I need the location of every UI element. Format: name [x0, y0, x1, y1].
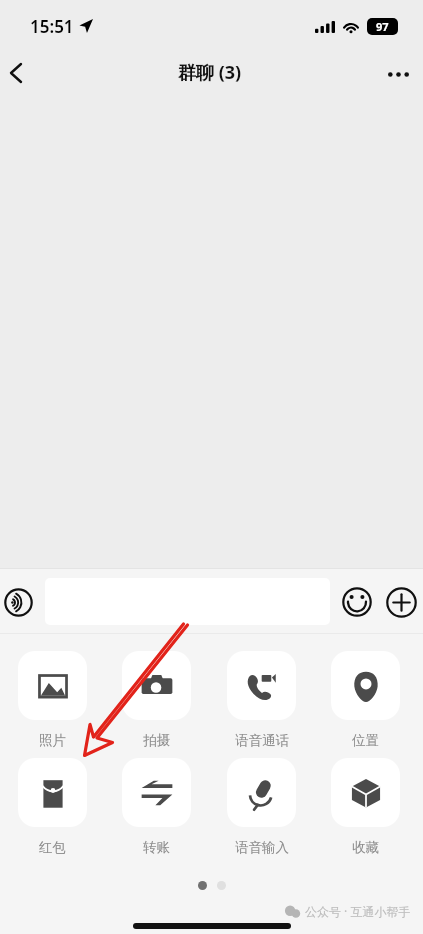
- button[interactable]: More: [375, 52, 423, 96]
- button[interactable]: Camera: [122, 651, 191, 720]
- staticText: 语音通话: [235, 732, 289, 749]
- button[interactable]: Voice to text: [227, 758, 296, 827]
- staticText: 语音输入: [235, 839, 289, 856]
- button[interactable]: Voice call: [227, 651, 296, 720]
- button[interactable]: Voice input: [0, 573, 45, 629]
- button[interactable]: Favorites: [331, 758, 400, 827]
- staticText: 公众号 · 互通小帮手: [305, 903, 411, 919]
- staticText: 15:51: [30, 15, 74, 38]
- button[interactable]: More options: [377, 573, 423, 629]
- staticText: 群聊 (3): [178, 60, 242, 85]
- staticText: 97: [376, 19, 389, 34]
- staticText: 红包: [39, 839, 66, 856]
- staticText: 拍摄: [143, 732, 170, 749]
- button[interactable]: Transfer: [122, 758, 191, 827]
- button[interactable]: Red packet: [18, 758, 87, 827]
- staticText: 收藏: [352, 839, 379, 856]
- staticText: 转账: [143, 839, 170, 856]
- button[interactable]: Photos: [18, 651, 87, 720]
- button[interactable]: Emoji: [330, 573, 377, 629]
- button[interactable]: [45, 578, 330, 625]
- button[interactable]: Back: [0, 52, 31, 96]
- staticText: 位置: [352, 732, 379, 749]
- staticText: 照片: [39, 732, 66, 749]
- button[interactable]: Location: [331, 651, 400, 720]
